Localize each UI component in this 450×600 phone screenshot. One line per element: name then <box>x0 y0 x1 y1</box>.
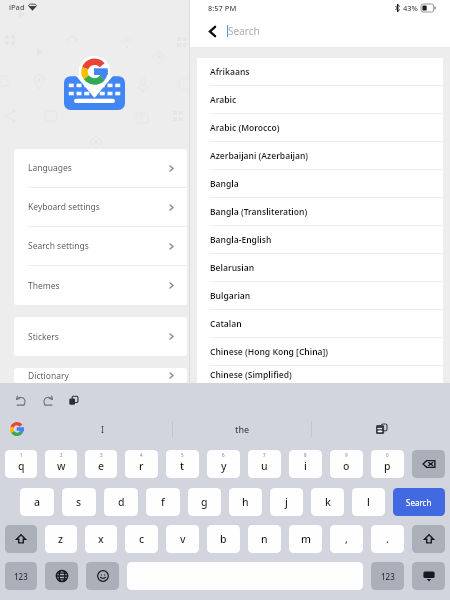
button[interactable]: 5 <box>166 450 199 478</box>
button[interactable]: Shift <box>412 525 445 553</box>
button[interactable]: I <box>34 417 172 441</box>
button[interactable]: Keyboard settings <box>14 188 187 226</box>
staticText: 123 <box>14 571 28 582</box>
button[interactable]: j <box>270 488 303 516</box>
button[interactable]: z <box>45 525 77 553</box>
staticText: Search settings <box>28 240 89 252</box>
staticText: 8:57 PM <box>208 3 237 13</box>
button[interactable]: Languages <box>14 149 187 187</box>
button[interactable]: n <box>248 525 281 553</box>
button[interactable]: Emoji <box>86 562 119 590</box>
staticText: Arabic <box>210 94 237 106</box>
button[interactable]: . <box>371 525 404 553</box>
button[interactable]: s <box>62 488 96 516</box>
button[interactable]: 4 <box>125 450 158 478</box>
button[interactable]: Chinese (Hong Kong [China]) <box>197 338 443 365</box>
staticText: 9 <box>345 452 348 458</box>
button[interactable]: Backspace <box>412 450 445 478</box>
staticText: p <box>384 459 391 473</box>
staticText: 2 <box>60 452 63 458</box>
button[interactable]: Search settings <box>14 227 187 265</box>
staticText: Bangla (Transliteration) <box>210 206 308 218</box>
button[interactable]: Back <box>201 20 223 42</box>
button[interactable]: f <box>146 488 180 516</box>
button[interactable]: a <box>20 488 54 516</box>
button[interactable]: Bulgarian <box>197 282 443 309</box>
staticText: q <box>18 459 25 473</box>
staticText: Belarusian <box>210 262 255 274</box>
button[interactable]: Translate <box>312 417 450 441</box>
button[interactable]: h <box>229 488 262 516</box>
button[interactable]: Bangla <box>197 170 443 197</box>
staticText: 3 <box>100 452 103 458</box>
button[interactable]: Google <box>0 417 34 441</box>
button[interactable]: v <box>166 525 199 553</box>
staticText: a <box>34 495 41 509</box>
staticText: h <box>242 495 249 509</box>
button[interactable]: Arabic (Morocco) <box>197 114 443 141</box>
button[interactable]: Themes <box>14 266 187 305</box>
button[interactable]: Bangla-English <box>197 226 443 253</box>
button[interactable]: Arabic <box>197 86 443 113</box>
staticText: 8 <box>304 452 307 458</box>
button[interactable]: l <box>352 488 385 516</box>
staticText: b <box>220 532 227 546</box>
button[interactable]: d <box>104 488 138 516</box>
staticText: Dictionary <box>28 370 69 382</box>
staticText: e <box>98 459 105 473</box>
button[interactable]: 3 <box>85 450 117 478</box>
button[interactable]: 123 <box>5 562 37 590</box>
button[interactable]: Hide keyboard <box>412 562 445 590</box>
button[interactable]: b <box>207 525 240 553</box>
button[interactable]: Dictionary <box>14 368 187 383</box>
button[interactable]: c <box>125 525 158 553</box>
button[interactable]: 2 <box>45 450 77 478</box>
button[interactable]: Bangla (Transliteration) <box>197 198 443 225</box>
staticText: Stickers <box>28 331 59 343</box>
staticText: z <box>58 532 64 546</box>
staticText: Catalan <box>210 318 242 330</box>
button[interactable]: the <box>173 417 311 441</box>
staticText: iPad <box>9 2 25 12</box>
staticText: g <box>201 495 208 509</box>
staticText: 7 <box>263 452 266 458</box>
button[interactable]: Clipboard <box>66 393 81 408</box>
staticText: m <box>301 532 311 546</box>
button[interactable]: 6 <box>207 450 240 478</box>
button[interactable]: g <box>188 488 221 516</box>
staticText: Bangla-English <box>210 234 272 246</box>
staticText: . <box>386 532 389 546</box>
button[interactable]: Afrikaans <box>197 58 443 85</box>
staticText: Afrikaans <box>210 66 250 78</box>
button[interactable]: , <box>330 525 363 553</box>
button[interactable]: Change language <box>45 562 78 590</box>
staticText: x <box>98 532 104 546</box>
button[interactable]: Search <box>393 488 445 516</box>
button[interactable]: Stickers <box>14 317 187 356</box>
button[interactable]: k <box>311 488 344 516</box>
staticText: 0 <box>386 452 389 458</box>
button[interactable]: Catalan <box>197 310 443 337</box>
button[interactable]: 0 <box>371 450 404 478</box>
staticText: k <box>325 495 331 509</box>
button[interactable]: Azerbaijani (Azerbaijan) <box>197 142 443 169</box>
staticText: n <box>261 532 268 546</box>
button[interactable]: m <box>289 525 322 553</box>
staticText: the <box>235 423 250 435</box>
button[interactable]: Undo <box>14 393 29 408</box>
staticText: 123 <box>381 571 395 582</box>
staticText: y <box>221 459 227 473</box>
button[interactable]: Shift <box>5 525 37 553</box>
button[interactable]: 8 <box>289 450 322 478</box>
button[interactable]: 123 <box>371 562 404 590</box>
button[interactable]: 9 <box>330 450 363 478</box>
staticText: Arabic (Morocco) <box>210 122 280 134</box>
button[interactable]: Redo <box>40 393 55 408</box>
staticText: Azerbaijani (Azerbaijan) <box>210 150 309 162</box>
button[interactable]: 7 <box>248 450 281 478</box>
button[interactable]: Chinese (Simplified) <box>197 366 443 383</box>
button[interactable]: 1 <box>5 450 37 478</box>
button[interactable]: Belarusian <box>197 254 443 281</box>
button[interactable]: x <box>85 525 117 553</box>
